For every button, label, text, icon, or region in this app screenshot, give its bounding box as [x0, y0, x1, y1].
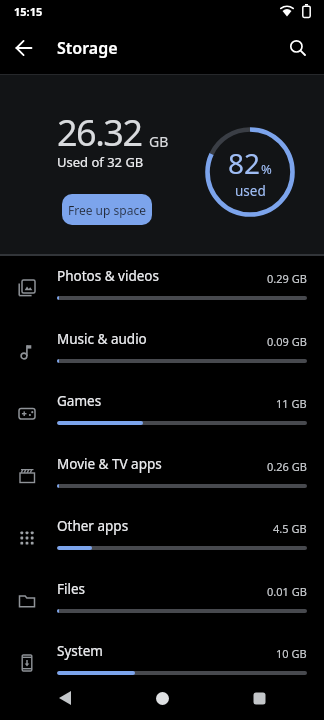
staticText: 0.09 GB	[267, 334, 307, 349]
button[interactable]: Photos & videos	[0, 256, 324, 318]
button[interactable]: Other apps	[0, 506, 324, 568]
staticText: Used of 32 GB	[57, 153, 144, 171]
staticText: Music & audio	[57, 330, 147, 348]
staticText: 11 GB	[276, 396, 307, 411]
staticText: 0.29 GB	[267, 271, 307, 286]
staticText: 10 GB	[276, 646, 307, 661]
staticText: 15:15	[14, 4, 43, 19]
button[interactable]	[4, 28, 44, 68]
staticText: Movie & TV apps	[57, 455, 162, 473]
button[interactable]	[41, 676, 89, 720]
staticText: Files	[57, 580, 86, 598]
staticText: %	[261, 160, 272, 178]
staticText: Other apps	[57, 517, 129, 535]
button[interactable]: Free up space	[62, 194, 152, 225]
button[interactable]: Movie & TV apps	[0, 444, 324, 506]
button[interactable]	[278, 28, 318, 68]
button[interactable]: Files	[0, 569, 324, 631]
staticText: 82	[228, 144, 261, 182]
button[interactable]: System	[0, 631, 324, 693]
button[interactable]: Music & audio	[0, 319, 324, 381]
staticText: Games	[57, 392, 102, 410]
staticText: Storage	[57, 37, 118, 59]
staticText: System	[57, 642, 103, 660]
staticText: 0.01 GB	[267, 584, 307, 599]
staticText: Photos & videos	[57, 267, 159, 285]
staticText: 26.32	[57, 108, 142, 157]
button[interactable]	[235, 676, 283, 720]
staticText: 4.5 GB	[273, 521, 307, 536]
staticText: GB	[149, 132, 169, 151]
button[interactable]: Games	[0, 381, 324, 443]
staticText: 0.26 GB	[267, 459, 307, 474]
staticText: Free up space	[68, 202, 146, 218]
button[interactable]	[138, 676, 186, 720]
staticText: used	[235, 182, 266, 200]
